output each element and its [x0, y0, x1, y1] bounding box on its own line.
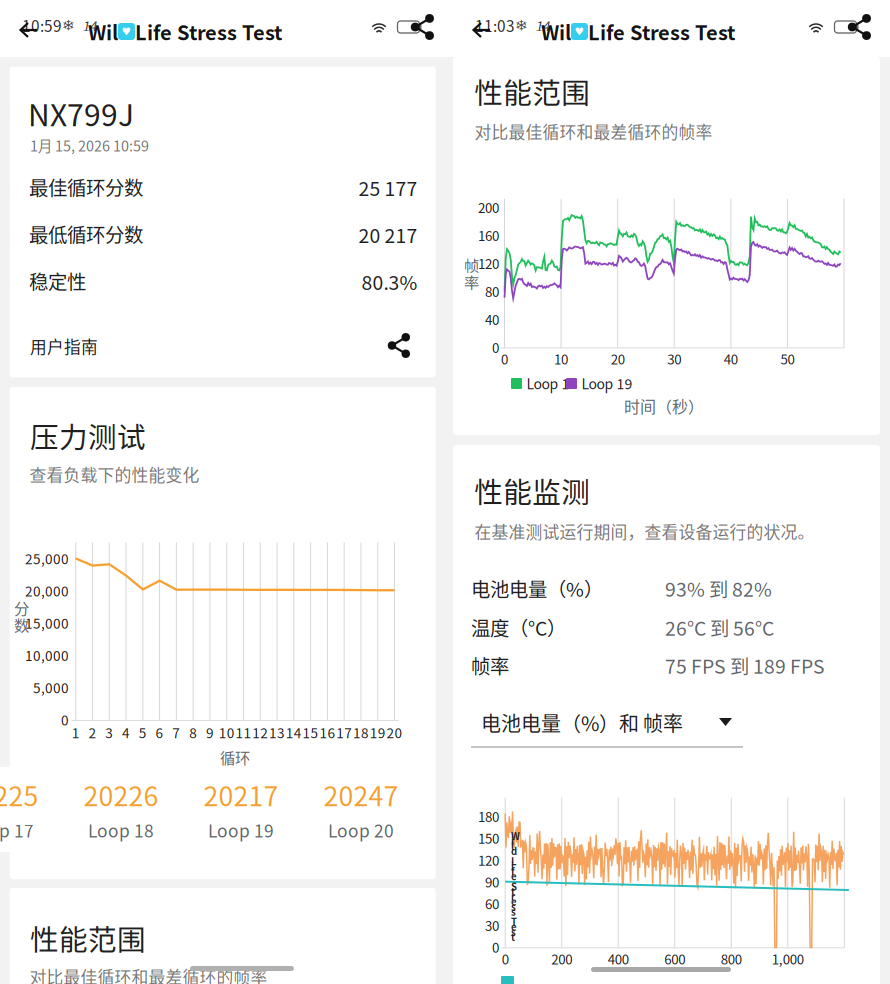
staticText: 12	[252, 723, 268, 742]
staticText: 14	[82, 16, 96, 35]
staticText	[511, 849, 513, 863]
staticText: 13	[269, 723, 285, 742]
staticText: 性能监测	[474, 470, 590, 511]
staticText: 0	[501, 349, 508, 368]
staticText: 400	[608, 949, 629, 968]
staticText: T	[511, 915, 517, 929]
staticText: 在基准测试运行期间，查看设备运行的状况。	[474, 519, 814, 543]
staticText: 10:59	[22, 14, 62, 36]
staticText: 50	[780, 349, 794, 368]
staticText: 14	[286, 723, 302, 742]
staticText: 11:03	[475, 14, 515, 36]
staticText: 20 217	[358, 221, 417, 249]
staticText: 帧	[464, 253, 479, 276]
staticText: 60	[485, 894, 499, 913]
staticText: 分	[14, 596, 29, 619]
staticText: 5,000	[33, 677, 69, 697]
staticText: 200	[551, 949, 572, 968]
staticText: 1	[72, 723, 80, 742]
staticText: Loop 19	[581, 373, 632, 393]
staticText: 11	[235, 723, 251, 742]
staticText: e	[511, 894, 517, 908]
staticText: r	[511, 889, 515, 903]
staticText: 7	[172, 723, 180, 742]
staticText: 18	[353, 723, 369, 742]
button[interactable]: 20225	[0, 767, 52, 852]
staticText: Life Stress Test	[135, 17, 282, 46]
staticText: 17	[336, 723, 352, 742]
staticText: 6	[156, 723, 164, 742]
button[interactable]: Share	[846, 14, 872, 40]
staticText: i	[511, 834, 514, 848]
staticText: 帧率	[471, 651, 509, 679]
staticText: t	[511, 930, 515, 944]
staticText: 120	[478, 850, 499, 869]
staticText: S	[511, 879, 517, 893]
staticText: 率	[464, 270, 479, 293]
staticText: 最低循环分数	[29, 220, 143, 248]
staticText: 10	[554, 349, 568, 368]
staticText: 用户指南	[30, 334, 98, 358]
staticText: 压力测试	[30, 415, 146, 456]
button[interactable]: Share	[409, 14, 435, 40]
staticText: 对比最佳循环和最差循环的帧率	[29, 964, 267, 984]
button[interactable]: 用户指南	[30, 325, 420, 369]
staticText: 15	[303, 723, 319, 742]
staticText	[511, 910, 513, 923]
staticText: W	[511, 829, 520, 843]
staticText: 0	[492, 937, 499, 957]
staticText: 25 177	[358, 174, 417, 202]
staticText: 性能范围	[30, 917, 146, 959]
staticText: 性能范围	[474, 71, 590, 112]
staticText: f	[511, 864, 515, 878]
staticText: 40	[724, 349, 738, 368]
staticText: 10	[219, 723, 235, 742]
staticText: 0	[61, 710, 69, 729]
staticText: 2	[88, 723, 96, 742]
staticText: 0	[492, 337, 499, 357]
staticText: 循环	[220, 746, 250, 768]
staticText: 20217	[203, 775, 278, 814]
staticText: l	[511, 839, 514, 853]
button[interactable]: 电池电量（%）和 帧率	[471, 702, 761, 750]
staticText: Loop 20	[328, 817, 394, 843]
staticText: e	[511, 869, 517, 883]
staticText: Wil	[88, 17, 118, 46]
button[interactable]: 20217	[190, 767, 292, 852]
staticText: 90	[485, 872, 499, 891]
staticText: 1月 15, 2026 10:59	[30, 135, 149, 156]
staticText: NX799J	[28, 91, 134, 135]
staticText: 160	[478, 225, 499, 245]
staticText: 5	[139, 723, 147, 742]
staticText: ♥	[121, 25, 131, 38]
button[interactable]: 20226	[70, 767, 172, 852]
staticText: 10,000	[25, 645, 69, 665]
staticText: 25,000	[25, 548, 69, 568]
staticText: 稳定性	[29, 267, 86, 295]
staticText: 20226	[83, 775, 158, 814]
staticText: i	[511, 859, 514, 873]
staticText: Loop 17	[0, 817, 34, 843]
staticText: 3	[105, 723, 113, 742]
staticText: ❄	[515, 17, 527, 34]
staticText	[511, 874, 513, 888]
staticText: 30	[667, 349, 681, 368]
staticText: 75 FPS 到 189 FPS	[665, 651, 825, 679]
staticText: 180	[478, 807, 499, 826]
staticText: 80	[485, 281, 499, 301]
staticText: Loop 1	[526, 373, 569, 393]
staticText: Wil	[541, 17, 571, 46]
staticText: s	[511, 925, 516, 939]
button[interactable]: Back	[459, 3, 505, 55]
staticText: 40	[485, 309, 499, 329]
staticText: 对比最佳循环和最差循环的帧率	[474, 119, 712, 143]
staticText: 20,000	[25, 581, 69, 600]
button[interactable]: Back	[6, 3, 52, 55]
staticText: s	[511, 899, 516, 913]
button[interactable]: 20247	[310, 767, 412, 852]
staticText: 9	[206, 723, 214, 742]
staticText: 20	[386, 723, 402, 742]
staticText: 电池电量（%）	[471, 574, 603, 602]
staticText: 16	[319, 723, 335, 742]
staticText: t	[511, 884, 515, 898]
